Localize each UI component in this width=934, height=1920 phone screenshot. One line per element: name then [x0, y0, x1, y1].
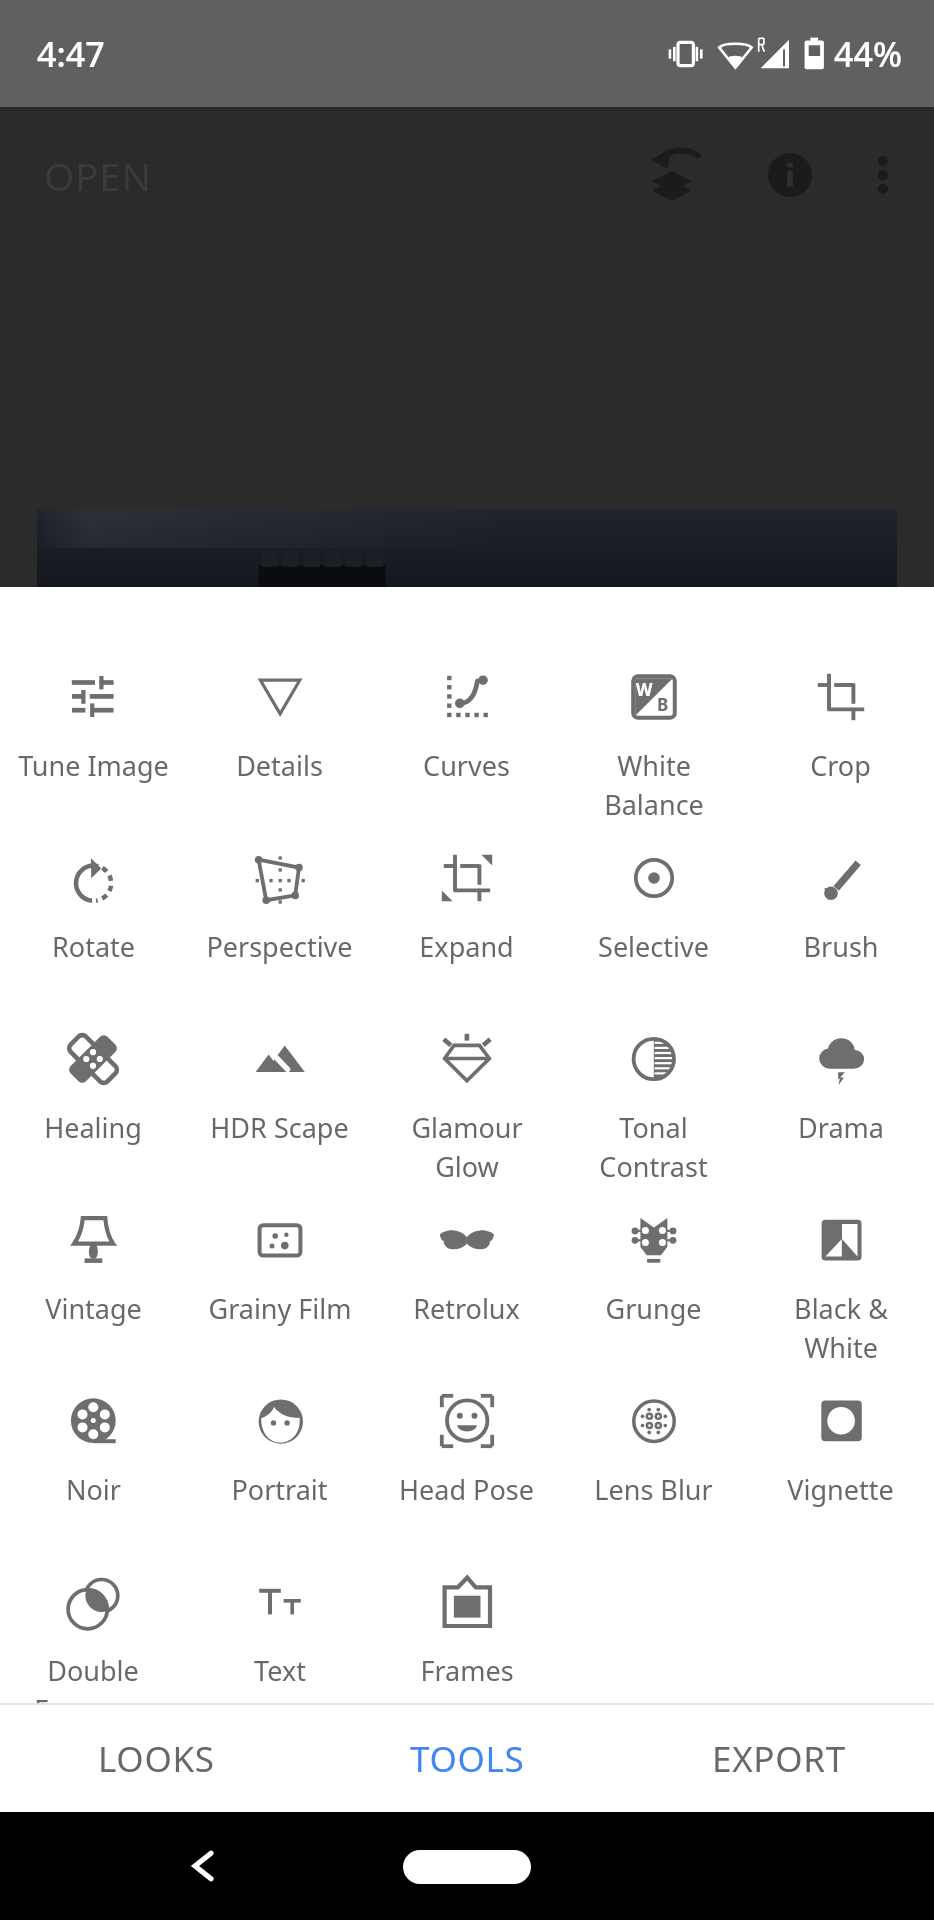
button[interactable]: LOOKS	[0, 1705, 312, 1812]
staticText: Vintage	[45, 1290, 142, 1327]
button[interactable]: Expand	[373, 843, 560, 1024]
button[interactable]: Crop	[747, 662, 934, 843]
staticText: 4:47	[37, 31, 105, 77]
staticText: Vignette	[787, 1471, 894, 1508]
button[interactable]: Revert	[634, 131, 722, 219]
staticText: Frames	[420, 1652, 514, 1689]
staticText: Drama	[798, 1109, 884, 1146]
button[interactable]: TOOLS	[312, 1705, 623, 1812]
button[interactable]: Glamour Glow	[373, 1024, 560, 1205]
staticText: Tune Image	[18, 747, 169, 784]
button[interactable]: EXPORT	[623, 1705, 934, 1812]
staticText: Portrait	[231, 1471, 328, 1508]
staticText: Grunge	[605, 1290, 702, 1327]
staticText: White Balance	[604, 747, 704, 823]
staticText: Lens Blur	[594, 1471, 713, 1508]
button[interactable]: Grainy Film	[186, 1205, 373, 1386]
button[interactable]: HDR Scape	[186, 1024, 373, 1205]
button[interactable]: Curves	[373, 662, 560, 843]
button[interactable]: Black & White	[747, 1205, 934, 1386]
button[interactable]: Grunge	[560, 1205, 747, 1386]
staticText: LOOKS	[98, 1735, 215, 1783]
button[interactable]: Perspective	[186, 843, 373, 1024]
staticText: EXPORT	[712, 1735, 846, 1783]
staticText: Noir	[66, 1471, 121, 1508]
staticText: Grainy Film	[208, 1290, 352, 1327]
staticText: Curves	[423, 747, 510, 784]
staticText: Tonal Contrast	[599, 1109, 708, 1185]
staticText: Perspective	[206, 928, 353, 965]
button[interactable]: W	[560, 662, 747, 843]
button[interactable]: Vintage	[0, 1205, 186, 1386]
staticText: 44%	[834, 31, 902, 77]
staticText: Double Exposure	[34, 1652, 152, 1705]
button[interactable]: Vignette	[747, 1386, 934, 1567]
staticText: W	[636, 678, 653, 701]
button[interactable]: Portrait	[186, 1386, 373, 1567]
button[interactable]: Back	[168, 1831, 238, 1901]
staticText: Head Pose	[399, 1471, 534, 1508]
button[interactable]: Selective	[560, 843, 747, 1024]
button[interactable]: Rotate	[0, 843, 186, 1024]
staticText: Healing	[44, 1109, 142, 1146]
button[interactable]: Brush	[747, 843, 934, 1024]
button[interactable]: Double Exposure	[0, 1567, 186, 1705]
staticText: Details	[236, 747, 323, 784]
staticText: Brush	[803, 928, 879, 965]
button[interactable]: Lens Blur	[560, 1386, 747, 1567]
button[interactable]: Text	[186, 1567, 373, 1705]
button[interactable]: Tonal Contrast	[560, 1024, 747, 1205]
staticText: Text	[254, 1652, 306, 1689]
staticText: Crop	[810, 747, 871, 784]
button[interactable]: Details	[186, 662, 373, 843]
staticText: HDR Scape	[210, 1109, 349, 1146]
button[interactable]: Tune Image	[0, 662, 186, 843]
button[interactable]: Info	[746, 131, 834, 219]
button[interactable]: OPEN	[44, 149, 152, 202]
button[interactable]: Healing	[0, 1024, 186, 1205]
button[interactable]: Home	[403, 1850, 531, 1884]
staticText: Expand	[419, 928, 514, 965]
staticText: Retrolux	[413, 1290, 520, 1327]
staticText: Selective	[598, 928, 709, 965]
button[interactable]: Noir	[0, 1386, 186, 1567]
button[interactable]: Frames	[373, 1567, 560, 1705]
staticText: Black & White	[794, 1290, 888, 1366]
button[interactable]: Drama	[747, 1024, 934, 1205]
button[interactable]: Head Pose	[373, 1386, 560, 1567]
staticText: Glamour Glow	[411, 1109, 523, 1185]
button[interactable]: Retrolux	[373, 1205, 560, 1386]
staticText: TOOLS	[410, 1735, 525, 1783]
staticText: Rotate	[52, 928, 135, 965]
staticText: B	[657, 693, 669, 716]
